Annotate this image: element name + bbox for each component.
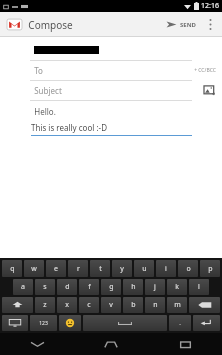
staticText: h — [131, 282, 136, 292]
button[interactable]: z — [35, 297, 55, 313]
button[interactable]: Recent apps — [148, 333, 222, 355]
button[interactable]: v — [101, 297, 121, 313]
staticText: e — [54, 264, 58, 274]
staticText: c — [87, 300, 91, 310]
button[interactable]: g — [101, 279, 121, 295]
staticText: SEND — [180, 21, 196, 29]
staticText: s — [43, 282, 47, 292]
button[interactable]: Hello. — [34, 106, 222, 117]
button[interactable]: a — [13, 279, 33, 295]
button[interactable]: b — [123, 297, 143, 313]
button[interactable]: q — [2, 260, 22, 277]
staticText: This is really cool :-D — [31, 122, 107, 133]
button[interactable]: Enter — [193, 315, 220, 331]
staticText: g — [109, 282, 114, 292]
button[interactable] — [0, 43, 222, 57]
staticText: r — [77, 264, 80, 274]
staticText: b — [131, 300, 136, 310]
staticText: 12:16 — [201, 1, 219, 11]
staticText: f — [88, 282, 91, 292]
button[interactable]: SEND — [162, 16, 200, 33]
button[interactable]: Attach image — [202, 83, 217, 98]
staticText: z — [43, 300, 47, 310]
button[interactable]: l — [189, 279, 209, 295]
button[interactable]: u — [134, 260, 154, 277]
staticText: v — [109, 300, 113, 310]
button[interactable]: Shift — [2, 297, 33, 313]
button[interactable]: m — [167, 297, 187, 313]
staticText: x — [65, 300, 69, 310]
staticText: m — [174, 300, 181, 310]
staticText: j — [154, 282, 156, 292]
button[interactable]: . — [169, 315, 191, 331]
button[interactable]: j — [145, 279, 165, 295]
staticText: d — [65, 282, 70, 292]
button[interactable]: f — [79, 279, 99, 295]
button[interactable]: n — [145, 297, 165, 313]
staticText: q — [10, 264, 15, 274]
staticText: To — [34, 65, 43, 76]
button[interactable]: Compose — [5, 15, 75, 34]
button[interactable]: Space — [83, 315, 167, 331]
staticText: y — [120, 264, 124, 274]
staticText: k — [175, 282, 179, 292]
button[interactable]: i — [156, 260, 176, 277]
button[interactable]: d — [57, 279, 77, 295]
staticText: Compose — [28, 18, 73, 32]
staticText: o — [186, 264, 191, 274]
button[interactable]: h — [123, 279, 143, 295]
staticText: n — [153, 300, 158, 310]
button[interactable]: More options — [204, 14, 217, 35]
button[interactable]: w — [24, 260, 44, 277]
button[interactable]: Delete — [189, 297, 220, 313]
staticText: 123 — [39, 320, 48, 327]
button[interactable]: p — [200, 260, 220, 277]
button[interactable]: Keyboard settings — [2, 315, 28, 331]
staticText: t — [99, 264, 102, 274]
staticText: w — [31, 264, 37, 274]
button[interactable]: Hide keyboard — [0, 333, 74, 355]
staticText: i — [165, 264, 167, 274]
button[interactable]: To — [0, 61, 222, 80]
staticText: l — [198, 282, 200, 292]
staticText: . — [179, 319, 181, 327]
button[interactable]: k — [167, 279, 187, 295]
button[interactable]: r — [68, 260, 88, 277]
staticText: a — [21, 282, 25, 292]
button[interactable]: o — [178, 260, 198, 277]
button[interactable]: 123 — [30, 315, 57, 331]
button[interactable]: t — [90, 260, 110, 277]
staticText: u — [142, 264, 147, 274]
button[interactable]: e — [46, 260, 66, 277]
button[interactable]: s — [35, 279, 55, 295]
staticText: + CC/BCC — [194, 67, 216, 74]
button[interactable]: This is really cool :-D — [31, 122, 192, 136]
button[interactable]: y — [112, 260, 132, 277]
staticText: Subject — [34, 85, 62, 96]
button[interactable]: c — [79, 297, 99, 313]
staticText: Hello. — [34, 106, 56, 117]
staticText: p — [208, 264, 213, 274]
button[interactable]: Home — [74, 333, 148, 355]
button[interactable]: Subject — [34, 85, 202, 96]
button[interactable]: Emoji — [59, 315, 81, 331]
button[interactable]: x — [57, 297, 77, 313]
